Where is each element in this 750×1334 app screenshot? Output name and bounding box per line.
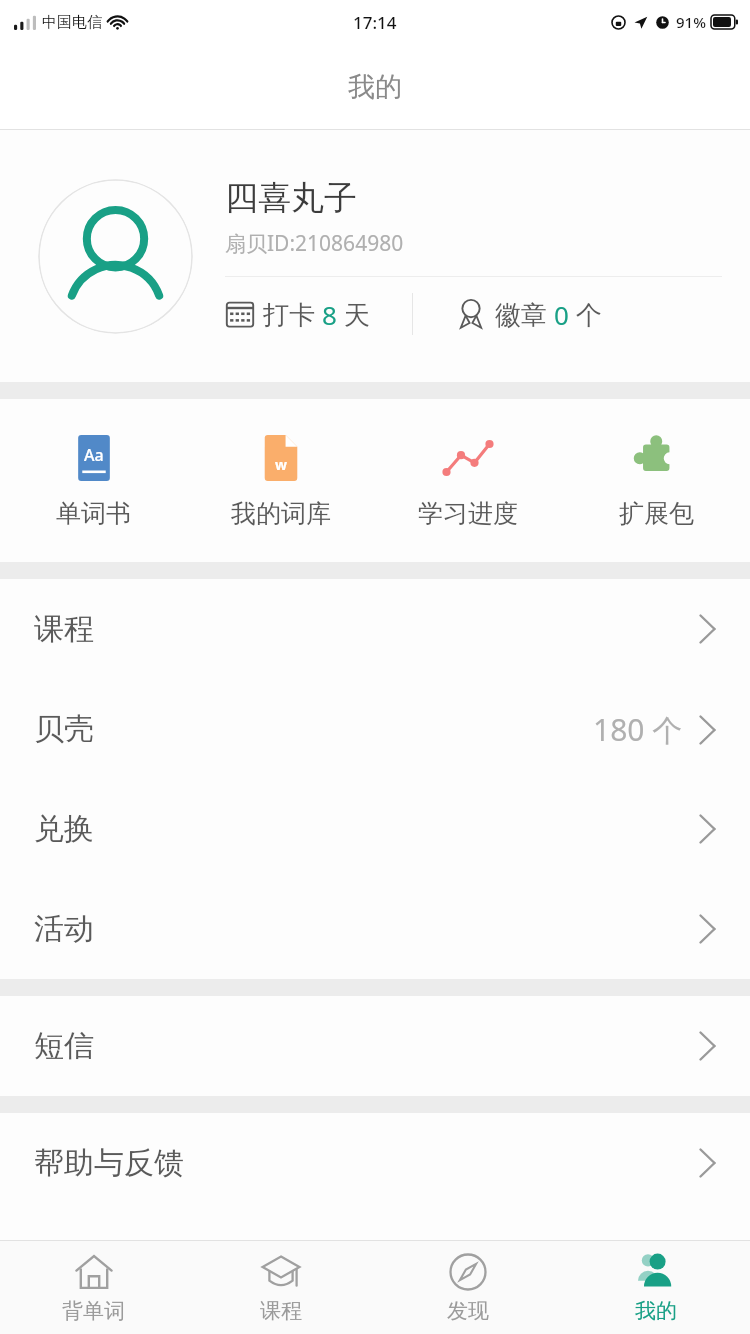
button[interactable]: 发现 bbox=[374, 1241, 562, 1334]
button[interactable]: 背单词 bbox=[0, 1241, 187, 1334]
staticText: 兑换 bbox=[34, 810, 94, 848]
staticText: 个 bbox=[569, 296, 602, 332]
staticText: 我的词库 bbox=[231, 498, 331, 529]
button[interactable]: 兑换 bbox=[0, 779, 750, 879]
button[interactable]: 我的 bbox=[562, 1241, 750, 1334]
staticText: 扩展包 bbox=[619, 498, 694, 529]
staticText: 帮助与反馈 bbox=[34, 1144, 184, 1182]
button[interactable]: 扩展包 bbox=[562, 399, 750, 562]
button[interactable]: 活动 bbox=[0, 879, 750, 979]
button[interactable]: 课程 bbox=[0, 579, 750, 679]
staticText: 打卡 bbox=[263, 296, 322, 332]
button[interactable]: 学习进度 bbox=[374, 399, 562, 562]
button[interactable]: 徽章 bbox=[455, 296, 602, 332]
staticText: 背单词 bbox=[62, 1298, 125, 1324]
button[interactable] bbox=[38, 179, 193, 334]
staticText: 8 bbox=[322, 297, 337, 332]
staticText: 91% bbox=[676, 12, 706, 32]
staticText: 0 bbox=[554, 297, 569, 332]
staticText: 活动 bbox=[34, 910, 94, 948]
staticText: 中国电信 bbox=[42, 13, 102, 32]
staticText: 学习进度 bbox=[418, 498, 518, 529]
button[interactable]: w bbox=[187, 399, 374, 562]
staticText: 180 个 bbox=[593, 709, 683, 750]
staticText: 课程 bbox=[260, 1298, 302, 1324]
staticText: 课程 bbox=[34, 610, 94, 648]
staticText: 我的 bbox=[635, 1298, 677, 1324]
staticText: Aa bbox=[84, 444, 104, 466]
staticText: 短信 bbox=[34, 1027, 94, 1065]
button[interactable]: 打卡 bbox=[225, 296, 370, 332]
staticText: 单词书 bbox=[56, 498, 131, 529]
staticText: 我的 bbox=[348, 70, 402, 104]
staticText: 发现 bbox=[447, 1298, 489, 1324]
staticText: 扇贝ID:210864980 bbox=[225, 229, 404, 258]
staticText: 天 bbox=[337, 296, 370, 332]
staticText: 徽章 bbox=[495, 296, 554, 332]
button[interactable]: 课程 bbox=[187, 1241, 374, 1334]
staticText: 17:14 bbox=[353, 11, 397, 34]
staticText: 贝壳 bbox=[34, 710, 94, 748]
button[interactable]: Aa bbox=[0, 399, 187, 562]
button[interactable]: 贝壳 bbox=[0, 679, 750, 779]
staticText: 四喜丸子 bbox=[225, 177, 357, 219]
button[interactable]: 帮助与反馈 bbox=[0, 1113, 750, 1213]
staticText: w bbox=[275, 455, 287, 474]
button[interactable]: 短信 bbox=[0, 996, 750, 1096]
